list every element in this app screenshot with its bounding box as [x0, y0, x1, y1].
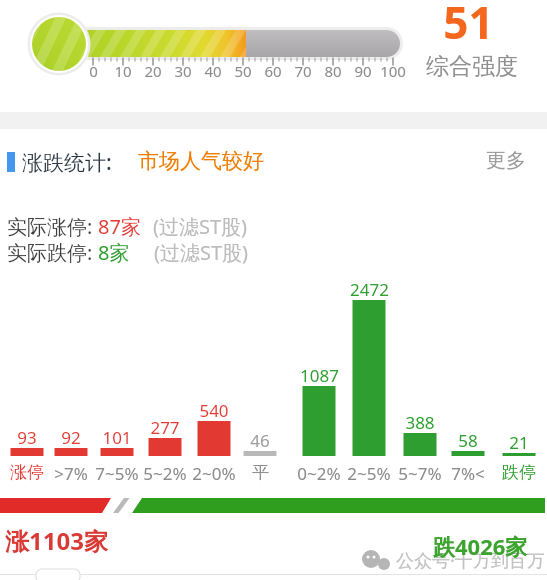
staticText: 80: [324, 61, 342, 81]
staticText: 7~5%: [95, 462, 139, 485]
staticText: 涨停: [10, 462, 44, 483]
staticText: 8家: [98, 239, 130, 266]
staticText: 388: [405, 411, 435, 434]
staticText: 21: [509, 431, 529, 454]
staticText: 92: [61, 426, 81, 449]
staticText: (过滤ST股): [153, 213, 248, 240]
staticText: >7%: [54, 462, 88, 485]
staticText: 实际跌停:: [7, 239, 98, 266]
staticText: 综合强度: [426, 52, 518, 81]
staticText: 5~2%: [143, 462, 187, 485]
staticText: 2472: [350, 278, 389, 301]
staticText: 51: [443, 0, 494, 52]
button[interactable]: 更多: [486, 148, 526, 173]
staticText: 90: [354, 61, 372, 81]
staticText: 101: [102, 426, 132, 449]
staticText: 跌停: [502, 462, 536, 483]
staticText: 涨跌统计:: [22, 148, 112, 177]
staticText: 277: [150, 416, 180, 439]
staticText: 更多: [486, 148, 526, 173]
staticText: 涨1103家: [5, 524, 108, 557]
staticText: 20: [144, 61, 162, 81]
staticText: 70: [294, 61, 312, 81]
staticText: 46: [250, 429, 270, 452]
staticText: 50: [234, 61, 252, 81]
staticText: 30: [174, 61, 192, 81]
staticText: 0~2%: [297, 462, 341, 485]
staticText: 平: [252, 462, 269, 483]
staticText: 实际涨停:: [7, 213, 98, 240]
staticText: 跌4026家: [433, 531, 528, 561]
staticText: 0: [89, 61, 98, 81]
staticText: 2~0%: [192, 462, 236, 485]
staticText: (过滤ST股): [154, 239, 249, 266]
staticText: 58: [458, 429, 478, 452]
staticText: 100: [380, 61, 406, 81]
staticText: 87家: [98, 213, 141, 240]
staticText: 93: [17, 426, 37, 449]
staticText: 40: [204, 61, 222, 81]
staticText: 市场人气较好: [138, 148, 264, 174]
staticText: 公众号·十万到百万: [396, 548, 545, 573]
staticText: 1087: [300, 364, 339, 387]
staticText: 7%<: [451, 462, 485, 485]
staticText: 2~5%: [347, 462, 391, 485]
staticText: 60: [264, 61, 282, 81]
staticText: 5~7%: [398, 462, 442, 485]
button[interactable]: 涨跌统计:: [22, 148, 112, 177]
staticText: 540: [199, 399, 229, 422]
staticText: 10: [114, 61, 132, 81]
